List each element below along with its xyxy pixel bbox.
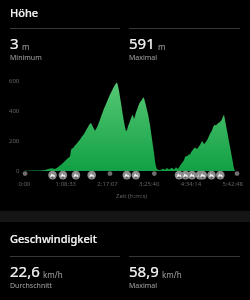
staticText: Höhe xyxy=(10,5,39,20)
other: Höhenprofil xyxy=(0,60,250,205)
button[interactable]: 58,9 xyxy=(129,256,240,291)
staticText: Maximal xyxy=(129,53,158,63)
button[interactable]: 3 xyxy=(10,28,120,63)
staticText: Minimum xyxy=(10,53,42,63)
staticText: m xyxy=(158,41,166,52)
staticText: Maximal xyxy=(129,281,158,291)
staticText: 3 xyxy=(10,33,19,53)
staticText: km/h xyxy=(43,269,63,280)
staticText: m xyxy=(22,41,30,52)
staticText: Durchschnitt xyxy=(10,281,53,291)
button[interactable]: 22,6 xyxy=(10,256,120,291)
staticText: 22,6 xyxy=(10,261,40,281)
staticText: 58,9 xyxy=(129,261,159,281)
button[interactable]: 591 xyxy=(129,28,240,63)
staticText: 591 xyxy=(129,33,155,53)
staticText: km/h xyxy=(162,269,182,280)
staticText: Geschwindigkeit xyxy=(10,231,97,246)
